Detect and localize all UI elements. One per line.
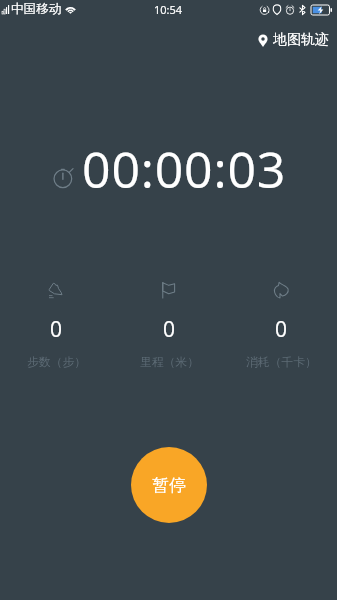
button[interactable]: 0 <box>0 277 113 370</box>
staticText: 00:00:03 <box>82 135 287 203</box>
button[interactable]: 暂停 <box>131 447 207 523</box>
staticText: 中国移动 <box>11 1 62 17</box>
button[interactable]: 0 <box>113 277 225 370</box>
staticText: 0 <box>50 315 63 344</box>
staticText: 步数（步） <box>27 355 86 370</box>
button[interactable]: 地图轨迹 <box>252 26 335 54</box>
button[interactable]: 0 <box>225 277 337 370</box>
staticText: 0 <box>163 315 176 344</box>
staticText: 0 <box>275 315 288 344</box>
staticText: 10:54 <box>154 2 183 17</box>
staticText: 暂停 <box>152 475 186 496</box>
staticText: 里程（米） <box>140 355 199 370</box>
staticText: 地图轨迹 <box>273 31 329 49</box>
staticText: 消耗（千卡） <box>246 355 317 370</box>
